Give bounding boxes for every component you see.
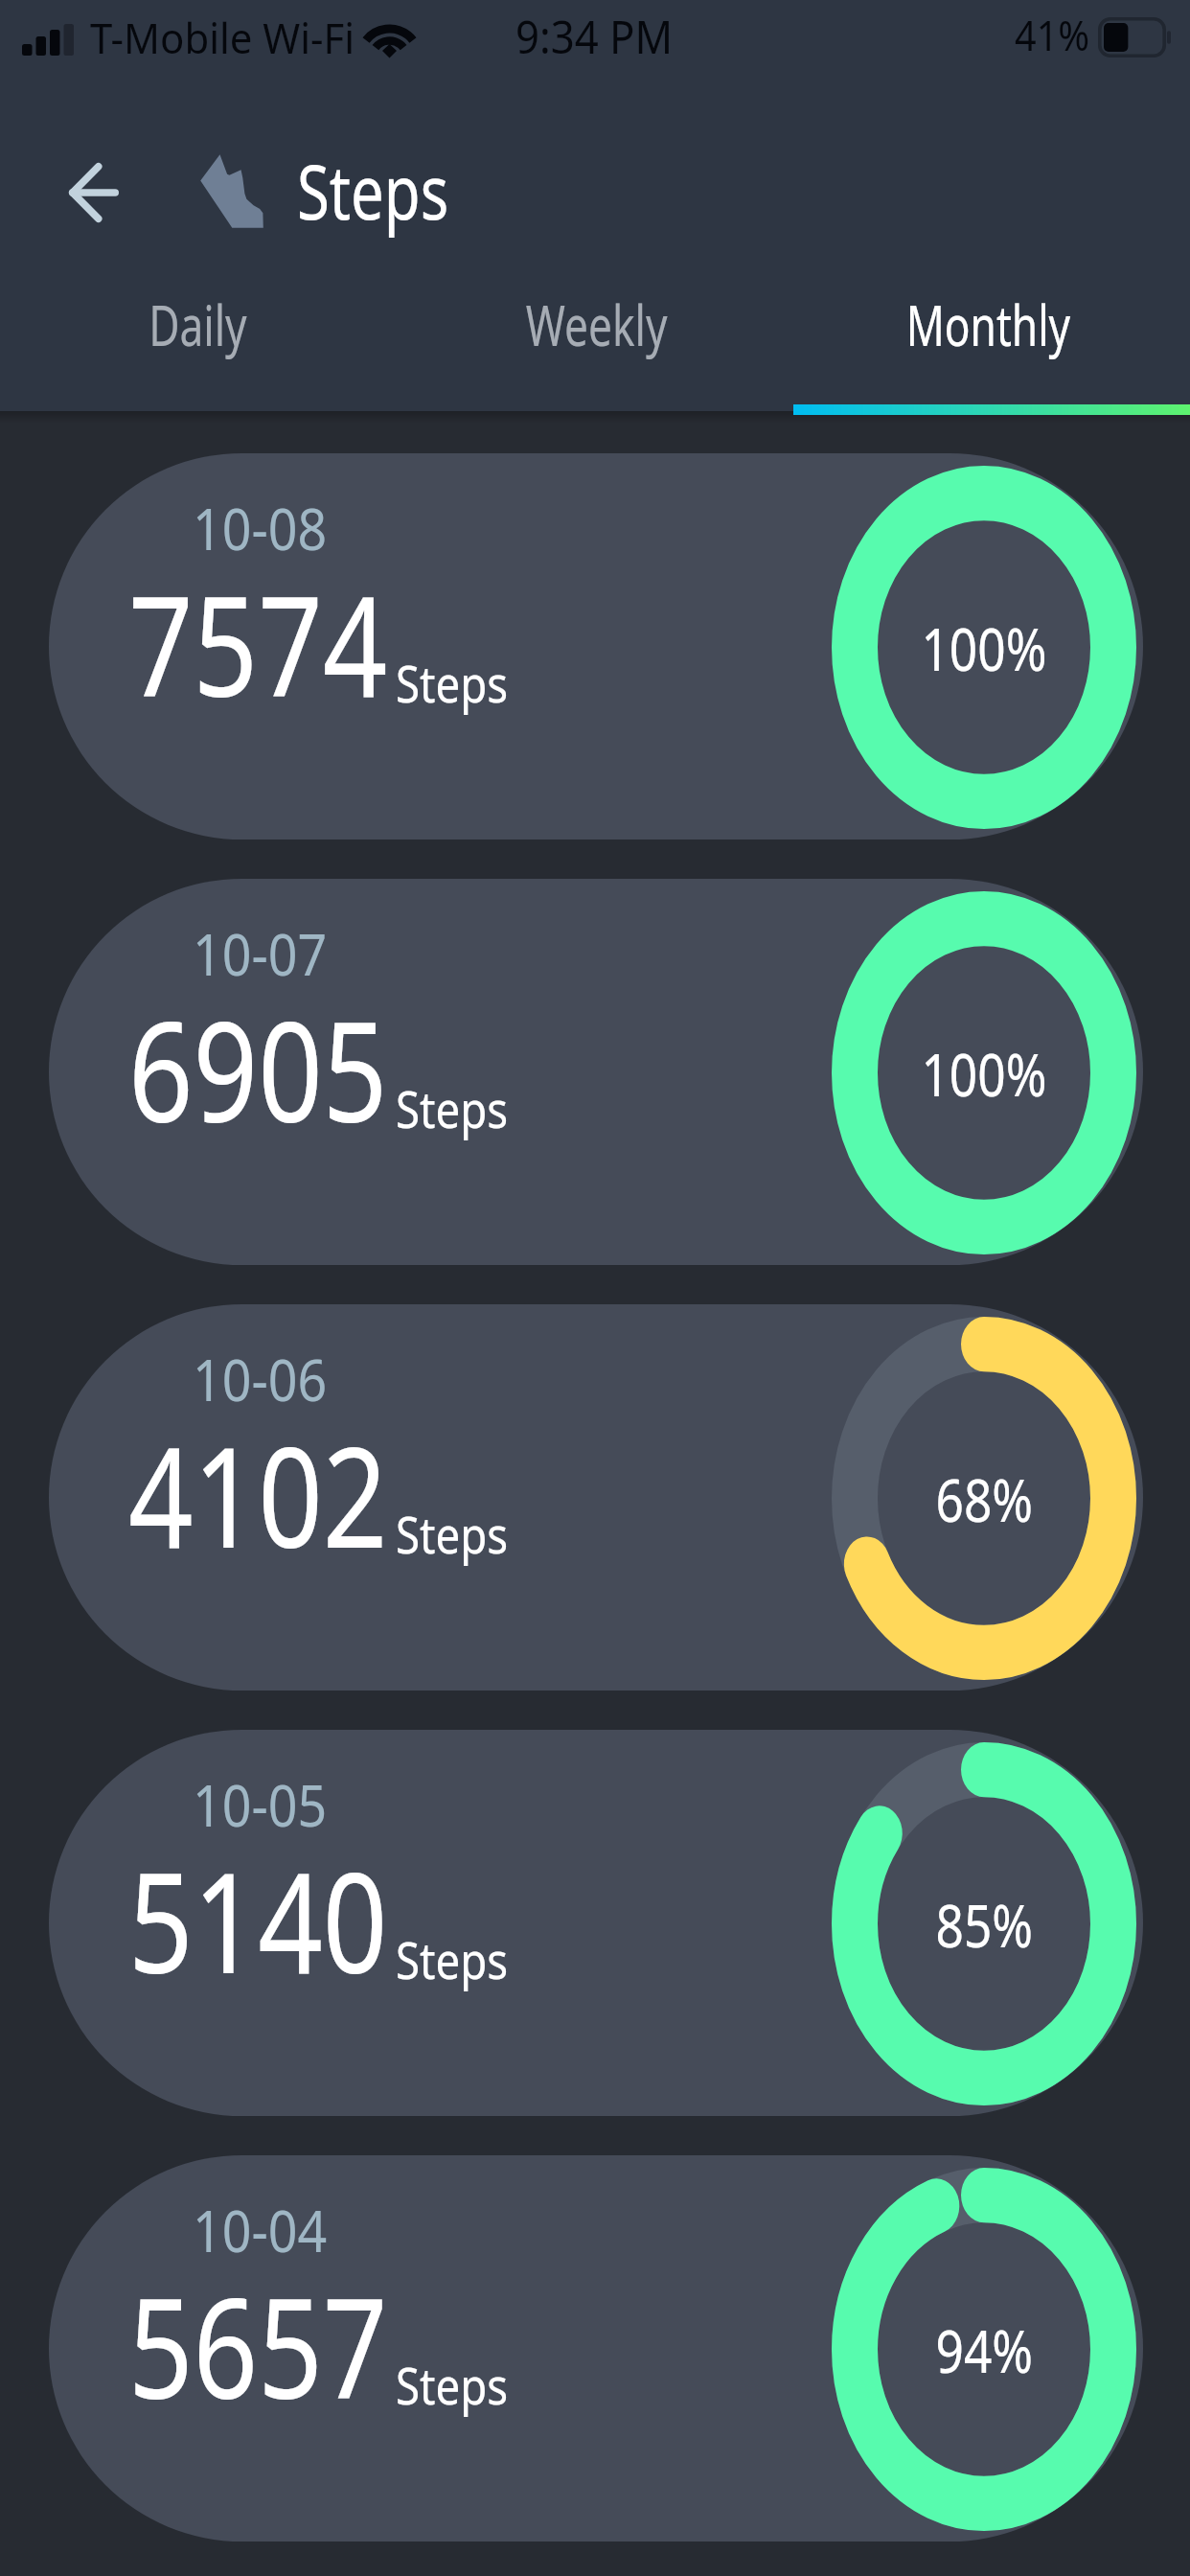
staticText: Steps	[396, 2350, 509, 2419]
button[interactable]: 10-08	[49, 453, 1143, 839]
staticText: 85%	[936, 1884, 1033, 1965]
staticText: 5657	[128, 2250, 388, 2439]
staticText: Monthly	[906, 286, 1071, 362]
button[interactable]: Monthly	[793, 251, 1190, 411]
staticText: T-Mobile Wi-Fi	[90, 9, 355, 66]
staticText: 10-06	[193, 1339, 327, 1418]
staticText: Weekly	[526, 286, 668, 362]
staticText: Steps	[396, 1924, 509, 1993]
staticText: Steps	[396, 1073, 509, 1142]
button[interactable]: Weekly	[397, 251, 793, 411]
button[interactable]: Daily	[0, 251, 397, 411]
button[interactable]: 10-05	[49, 1730, 1143, 2116]
staticText: 10-07	[193, 913, 327, 993]
staticText: Steps	[396, 648, 509, 717]
staticText: Steps	[297, 139, 449, 242]
staticText: 68%	[936, 1459, 1033, 1539]
staticText: 10-08	[193, 488, 327, 567]
staticText: 6905	[128, 974, 388, 1162]
staticText: 4102	[128, 1399, 388, 1588]
staticText: 9:34 PM	[515, 6, 673, 66]
staticText: 41%	[1015, 7, 1090, 63]
button[interactable]: Back	[36, 135, 151, 250]
staticText: 100%	[921, 1033, 1047, 1114]
button[interactable]: 10-06	[49, 1304, 1143, 1690]
staticText: 94%	[936, 2310, 1033, 2390]
staticText: Steps	[396, 1499, 509, 1568]
staticText: 5140	[128, 1825, 388, 2013]
staticText: 10-04	[193, 2190, 327, 2269]
staticText: 7574	[128, 548, 388, 737]
staticText: 10-05	[193, 1764, 327, 1844]
button[interactable]: 10-04	[49, 2155, 1143, 2541]
button[interactable]: 10-07	[49, 879, 1143, 1265]
staticText: Daily	[149, 286, 247, 362]
staticText: 100%	[921, 608, 1047, 688]
